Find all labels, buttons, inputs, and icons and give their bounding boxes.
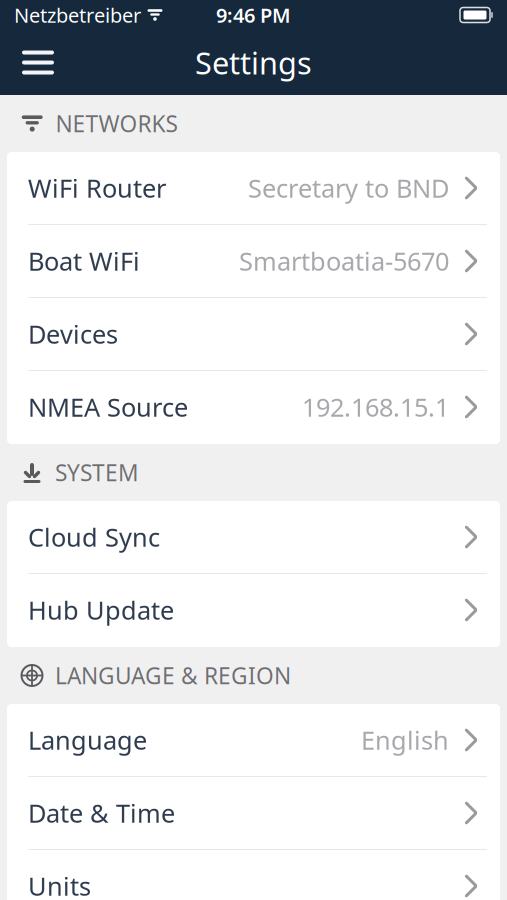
staticText: NMEA Source bbox=[28, 390, 188, 424]
button[interactable]: Hub Update bbox=[7, 574, 500, 647]
staticText: Language bbox=[28, 723, 147, 757]
staticText: Netzbetreiber bbox=[14, 2, 141, 28]
staticText: Boat WiFi bbox=[28, 244, 140, 278]
staticText: NETWORKS bbox=[55, 108, 177, 138]
button[interactable]: Devices bbox=[7, 298, 500, 371]
staticText: 9:46 PM bbox=[216, 2, 291, 28]
button[interactable]: Units bbox=[7, 850, 500, 900]
staticText: Secretary to BND bbox=[248, 171, 449, 205]
staticText: English bbox=[361, 723, 449, 757]
button[interactable]: NMEA Source bbox=[7, 371, 500, 444]
button[interactable]: Menu bbox=[12, 40, 64, 84]
button[interactable]: Date & Time bbox=[7, 777, 500, 850]
staticText: Date & Time bbox=[28, 796, 175, 830]
staticText: Cloud Sync bbox=[28, 520, 160, 554]
staticText: Units bbox=[28, 869, 91, 900]
button[interactable]: Language bbox=[7, 704, 500, 777]
staticText: Settings bbox=[195, 42, 312, 83]
button[interactable]: WiFi Router bbox=[7, 152, 500, 225]
staticText: Devices bbox=[28, 317, 118, 351]
staticText: Smartboatia-5670 bbox=[239, 244, 449, 278]
button[interactable]: Cloud Sync bbox=[7, 501, 500, 574]
staticText: SYSTEM bbox=[55, 457, 139, 487]
staticText: WiFi Router bbox=[28, 171, 166, 205]
staticText: LANGUAGE & REGION bbox=[55, 660, 291, 690]
button[interactable]: Boat WiFi bbox=[7, 225, 500, 298]
staticText: 192.168.15.1 bbox=[302, 390, 449, 424]
staticText: Hub Update bbox=[28, 593, 174, 627]
